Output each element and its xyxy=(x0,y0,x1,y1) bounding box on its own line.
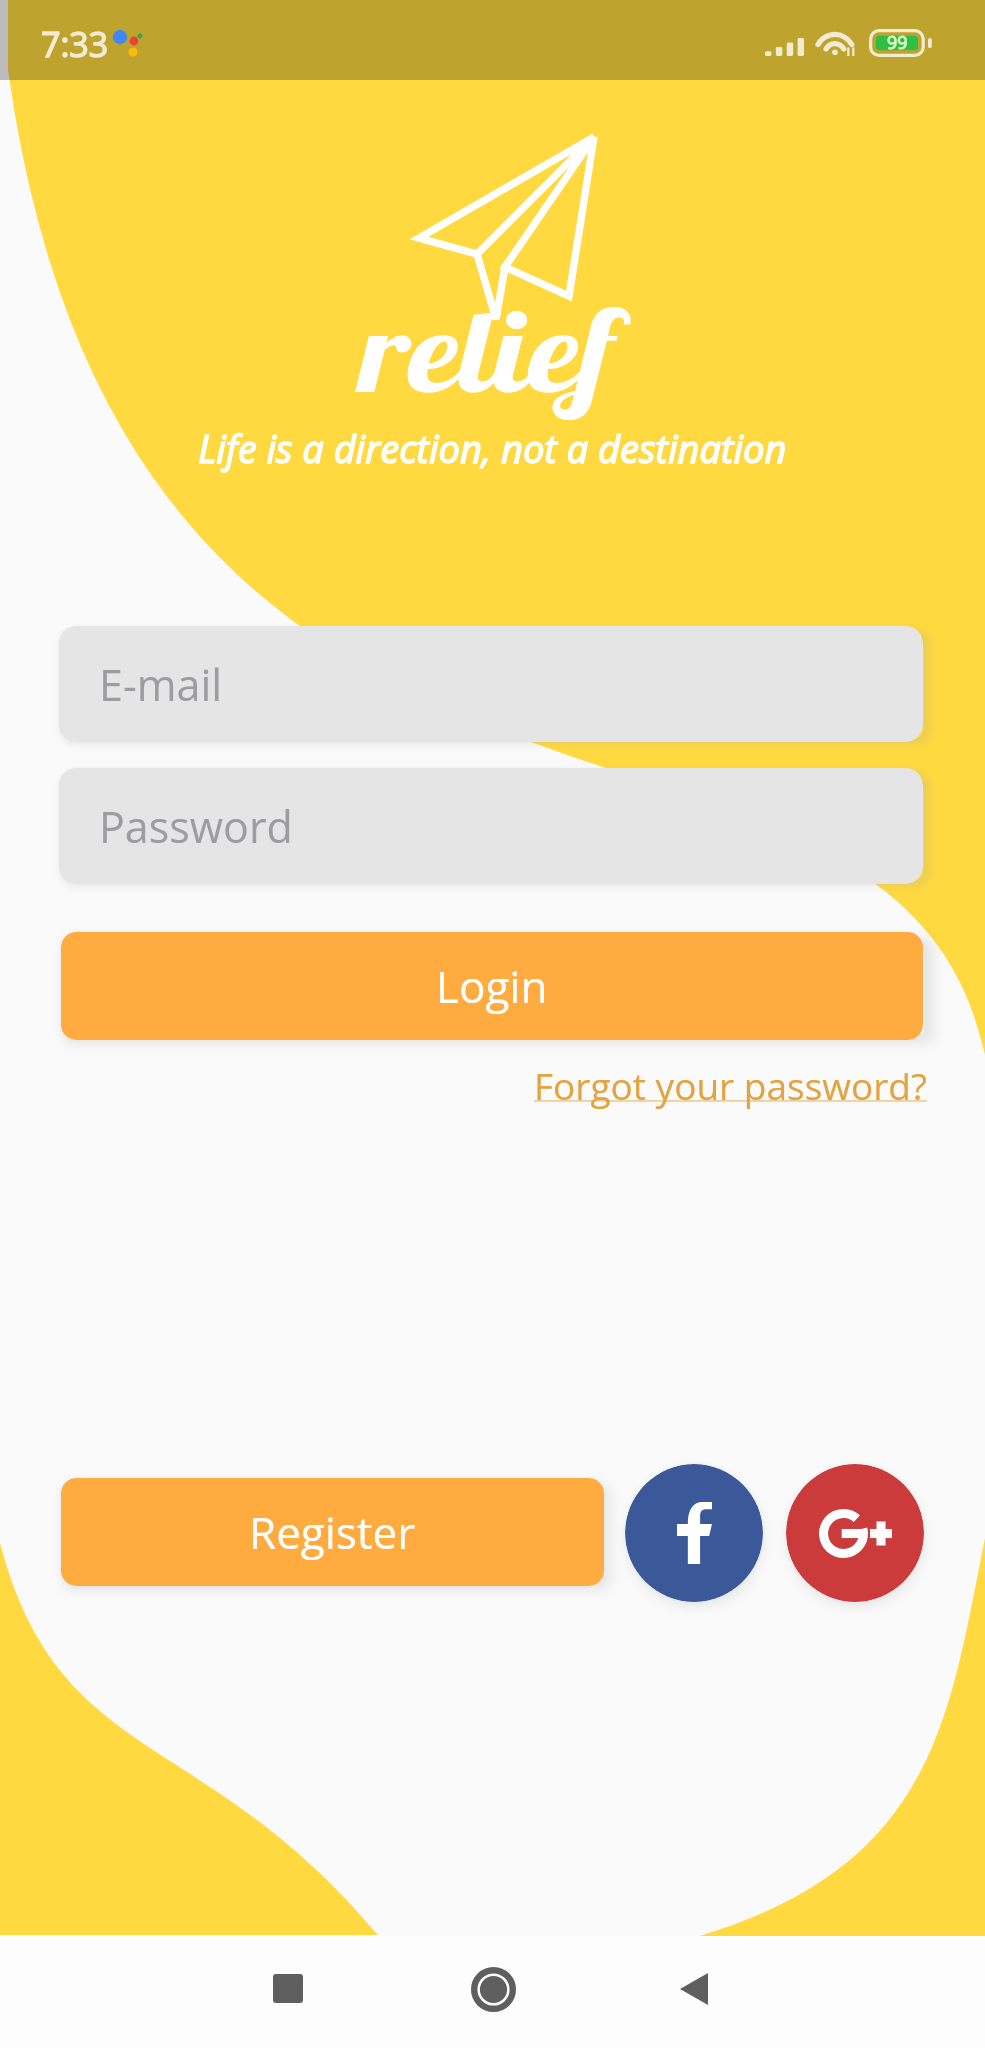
button[interactable]: Sign in with Google xyxy=(786,1464,924,1602)
staticText: Password xyxy=(99,797,293,856)
staticText: 99 xyxy=(887,30,908,55)
staticText: Forgot your password? xyxy=(534,1060,927,1110)
button[interactable]: Forgot your password? xyxy=(534,1060,927,1110)
staticText: relief xyxy=(358,279,613,420)
button[interactable]: Recent apps xyxy=(238,1938,338,2038)
button[interactable]: Login xyxy=(61,932,923,1040)
button[interactable]: Home xyxy=(443,1939,543,2039)
button[interactable]: Register xyxy=(61,1478,604,1586)
staticText: Login xyxy=(436,956,548,1016)
button[interactable]: Back xyxy=(644,1939,744,2039)
button[interactable]: Password xyxy=(59,768,923,884)
staticText: E-mail xyxy=(99,655,223,714)
button[interactable]: Sign in with Facebook xyxy=(625,1464,763,1602)
staticText: Life is a direction, not a destination xyxy=(198,422,787,474)
staticText: Register xyxy=(249,1502,416,1562)
staticText: 7:33 xyxy=(41,21,109,67)
button[interactable]: E-mail xyxy=(59,626,923,742)
